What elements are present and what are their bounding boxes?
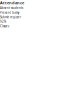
staticText: Submit register — [0, 15, 21, 19]
staticText: 92% — [0, 20, 6, 23]
staticText: Attendance — [0, 0, 24, 5]
staticText: Classes — [0, 24, 9, 28]
staticText: Present today — [0, 11, 19, 14]
staticText: Absent students — [0, 6, 23, 10]
